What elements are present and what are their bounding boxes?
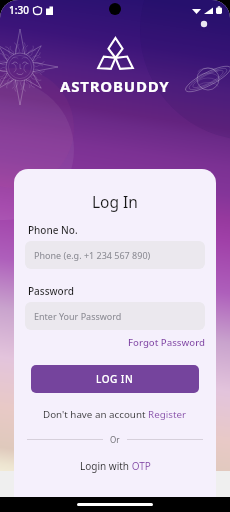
button[interactable]: Phone (e.g. +1 234 567 890) xyxy=(25,241,205,269)
staticText: LOG IN xyxy=(96,372,134,386)
staticText: Log In xyxy=(92,191,138,212)
staticText: ASTROBUDDY xyxy=(60,76,170,96)
button[interactable]: Forgot Password xyxy=(128,336,205,349)
staticText: Password xyxy=(28,284,74,298)
staticText: Enter Your Password xyxy=(34,310,122,322)
button[interactable]: Enter Your Password xyxy=(25,302,205,330)
staticText: 1:30 xyxy=(9,3,29,17)
staticText: Phone No. xyxy=(28,223,78,237)
button[interactable]: LOG IN xyxy=(31,365,199,393)
staticText: Phone (e.g. +1 234 567 890) xyxy=(34,249,151,261)
staticText: Login with OTP xyxy=(80,459,151,473)
staticText: Don't have an account Register xyxy=(43,408,187,421)
staticText: Or xyxy=(110,434,120,445)
button[interactable]: Login with OTP xyxy=(14,459,216,473)
button[interactable]: Don't have an account Register xyxy=(14,408,216,421)
